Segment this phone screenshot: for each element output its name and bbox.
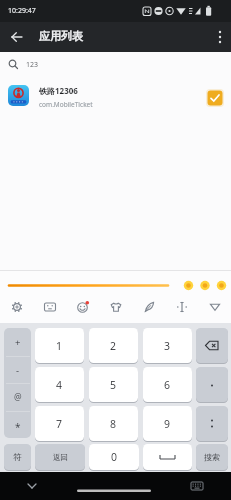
button[interactable]: 铁路12306 <box>0 79 231 112</box>
button[interactable]: 符 <box>4 444 31 470</box>
button[interactable]: 搜索 <box>196 444 228 470</box>
button[interactable]: 4 <box>35 367 84 402</box>
button[interactable] <box>20 476 44 496</box>
button[interactable]: 0 <box>89 444 139 470</box>
staticText: 6 <box>164 378 171 392</box>
staticText: 7 <box>56 417 63 431</box>
staticText: 2 <box>110 339 117 353</box>
staticText: 9 <box>164 417 171 431</box>
button[interactable]: 5 <box>89 367 138 402</box>
button[interactable]: 返回 <box>35 444 85 470</box>
button[interactable] <box>135 294 163 320</box>
button[interactable] <box>3 294 31 320</box>
button[interactable]: 8 <box>89 406 138 441</box>
staticText: 搜索 <box>204 452 220 462</box>
button[interactable] <box>69 294 97 320</box>
button[interactable] <box>70 480 158 496</box>
button[interactable] <box>196 367 228 402</box>
button[interactable] <box>201 294 229 320</box>
button[interactable] <box>196 406 228 441</box>
button[interactable] <box>143 444 192 470</box>
button[interactable] <box>6 22 30 52</box>
staticText: com.MobileTicket <box>39 100 93 109</box>
button[interactable]: - <box>4 356 31 384</box>
staticText: 返回 <box>53 453 68 462</box>
staticText: 10:29:47 <box>8 6 36 16</box>
button[interactable]: + <box>4 328 31 356</box>
staticText: - <box>16 364 20 377</box>
staticText: 符 <box>13 452 22 463</box>
button[interactable] <box>168 294 196 320</box>
button[interactable] <box>196 328 228 363</box>
staticText: 8 <box>110 417 117 431</box>
staticText: 应用列表 <box>39 29 83 43</box>
button[interactable]: 7 <box>35 406 84 441</box>
staticText: 铁路12306 <box>39 85 78 96</box>
button[interactable] <box>36 294 64 320</box>
staticText: * <box>15 420 21 434</box>
staticText: 123 <box>26 60 39 70</box>
button[interactable] <box>102 294 130 320</box>
staticText: 3 <box>164 339 171 353</box>
button[interactable] <box>186 476 210 496</box>
button[interactable]: @ <box>4 383 31 411</box>
button[interactable]: 1 <box>35 328 84 363</box>
button[interactable]: 3 <box>143 328 192 363</box>
button[interactable]: 2 <box>89 328 138 363</box>
staticText: + <box>15 336 21 349</box>
button[interactable]: * <box>4 411 31 439</box>
staticText: @ <box>14 391 22 403</box>
staticText: 4 <box>56 378 63 392</box>
staticText: 1 <box>56 339 63 353</box>
staticText: 5 <box>110 378 117 392</box>
staticText: 0 <box>111 450 118 464</box>
button[interactable]: 123 <box>0 52 231 78</box>
button[interactable] <box>208 22 231 52</box>
button[interactable] <box>206 89 224 107</box>
button[interactable]: 6 <box>143 367 192 402</box>
button[interactable]: 9 <box>143 406 192 441</box>
